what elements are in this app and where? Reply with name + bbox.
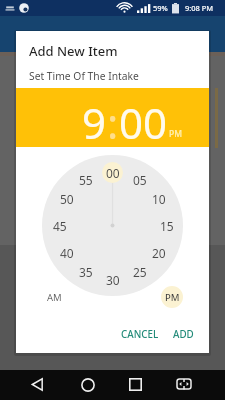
- staticText: 9:08 PM: [185, 3, 214, 13]
- staticText: PM: [169, 128, 182, 140]
- staticText: 55: [79, 172, 93, 188]
- staticText: 00: [106, 165, 120, 181]
- button[interactable]: 35: [75, 261, 96, 282]
- staticText: 15: [160, 218, 174, 234]
- button[interactable]: Back: [25, 372, 50, 397]
- button[interactable]: AM: [43, 286, 65, 308]
- staticText: 59%: [153, 3, 168, 13]
- button[interactable]: 20: [148, 242, 169, 263]
- button[interactable]: 45: [49, 215, 70, 236]
- staticText: ADD: [173, 328, 194, 341]
- button[interactable]: Screen capture: [171, 371, 196, 396]
- button[interactable]: 00: [102, 162, 123, 183]
- button[interactable]: 50: [56, 188, 77, 209]
- button[interactable]: Recents: [123, 372, 148, 397]
- staticText: Add New Item: [29, 42, 118, 60]
- button[interactable]: CANCEL: [115, 322, 165, 347]
- staticText: Set Time Of The Intake: [29, 69, 139, 83]
- button[interactable]: Home: [75, 372, 100, 397]
- button[interactable]: 25: [129, 261, 150, 282]
- staticText: 45: [53, 218, 67, 234]
- staticText: 10: [152, 191, 166, 207]
- button[interactable]: 15: [156, 215, 177, 236]
- staticText: 25: [133, 264, 147, 280]
- button[interactable]: 05: [129, 169, 150, 190]
- button[interactable]: PM: [161, 286, 183, 308]
- button[interactable]: 00: [119, 94, 168, 151]
- staticText: 30: [106, 272, 120, 288]
- staticText: CANCEL: [121, 328, 159, 341]
- staticText: 50: [60, 191, 74, 207]
- button[interactable]: 40: [56, 242, 77, 263]
- staticText: 35: [79, 264, 93, 280]
- button[interactable]: 55: [75, 169, 96, 190]
- button[interactable]: ADD: [167, 322, 200, 347]
- staticText: AM: [47, 291, 62, 304]
- button[interactable]: 9: [82, 94, 107, 151]
- button[interactable]: 30: [102, 269, 123, 290]
- staticText: 20: [152, 245, 166, 261]
- staticText: PM: [165, 291, 180, 304]
- staticText: 05: [133, 172, 147, 188]
- button[interactable]: 10: [148, 188, 169, 209]
- staticText: :: [107, 94, 119, 151]
- staticText: 40: [60, 245, 74, 261]
